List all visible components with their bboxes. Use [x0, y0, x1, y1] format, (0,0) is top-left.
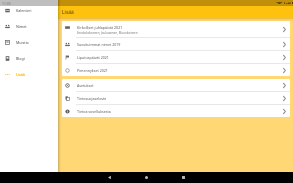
- staticText: Nimet: [16, 24, 27, 29]
- button[interactable]: Tietosuojaseloste: [62, 92, 290, 105]
- button[interactable]: Lisää: [0, 66, 58, 82]
- staticText: Kalenteri: [16, 8, 32, 13]
- staticText: Lisää: [16, 72, 25, 77]
- staticText: Muistio: [16, 40, 29, 45]
- staticText: Pimennykset 2021: [77, 68, 283, 73]
- staticText: Blogi: [16, 56, 25, 61]
- staticText: Kirkolliset juhlapäivät 2021: [77, 25, 123, 30]
- button[interactable]: Kalenteri: [0, 2, 58, 18]
- button[interactable]: Recents: [165, 172, 202, 183]
- staticText: Asetukset: [77, 83, 283, 88]
- other: Back: [107, 175, 112, 180]
- staticText: Emakokokaneen, Jouluaamen, Muunkaineen: [77, 31, 138, 35]
- button[interactable]: Blogi: [0, 50, 58, 66]
- button[interactable]: Nimet: [0, 18, 58, 34]
- staticText: Liputuspäivät 2021: [77, 55, 283, 60]
- other: Home: [144, 175, 149, 180]
- button[interactable]: Pimennykset 2021: [62, 64, 290, 76]
- button[interactable]: Liputuspäivät 2021: [62, 51, 290, 64]
- staticText: Suosituimmat nimet 2019: [77, 42, 283, 47]
- button[interactable]: Asetukset: [62, 79, 290, 92]
- staticText: Tietosuojaseloste: [77, 96, 283, 101]
- staticText: Tietoa sovelluksesta: [77, 109, 283, 114]
- button[interactable]: Muistio: [0, 34, 58, 50]
- other: Recents: [181, 175, 186, 180]
- staticText: 11:05: [2, 1, 11, 6]
- button[interactable]: Kirkolliset juhlapäivät 2021: [62, 21, 290, 38]
- button[interactable]: Back: [91, 172, 128, 183]
- button[interactable]: Tietoa sovelluksesta: [62, 105, 290, 117]
- button[interactable]: Suosituimmat nimet 2019: [62, 38, 290, 51]
- button[interactable]: Home: [128, 172, 165, 183]
- staticText: Lisää: [62, 9, 74, 16]
